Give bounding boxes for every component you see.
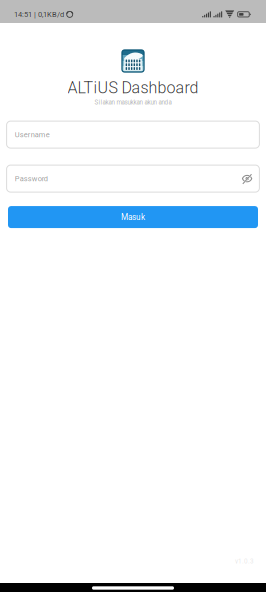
staticText: 14:51 | 0,1KB/d bbox=[14, 10, 64, 19]
staticText: Username bbox=[15, 130, 50, 139]
staticText: Masuk bbox=[121, 212, 145, 222]
button[interactable]: Masuk bbox=[8, 206, 258, 228]
button[interactable]: Show password bbox=[242, 174, 253, 184]
staticText: Silakan masukkan akun anda bbox=[94, 99, 171, 106]
staticText: v1.0.3 bbox=[235, 557, 254, 565]
staticText: Password bbox=[15, 174, 48, 183]
staticText: ALTiUS Dashboard bbox=[67, 78, 198, 97]
